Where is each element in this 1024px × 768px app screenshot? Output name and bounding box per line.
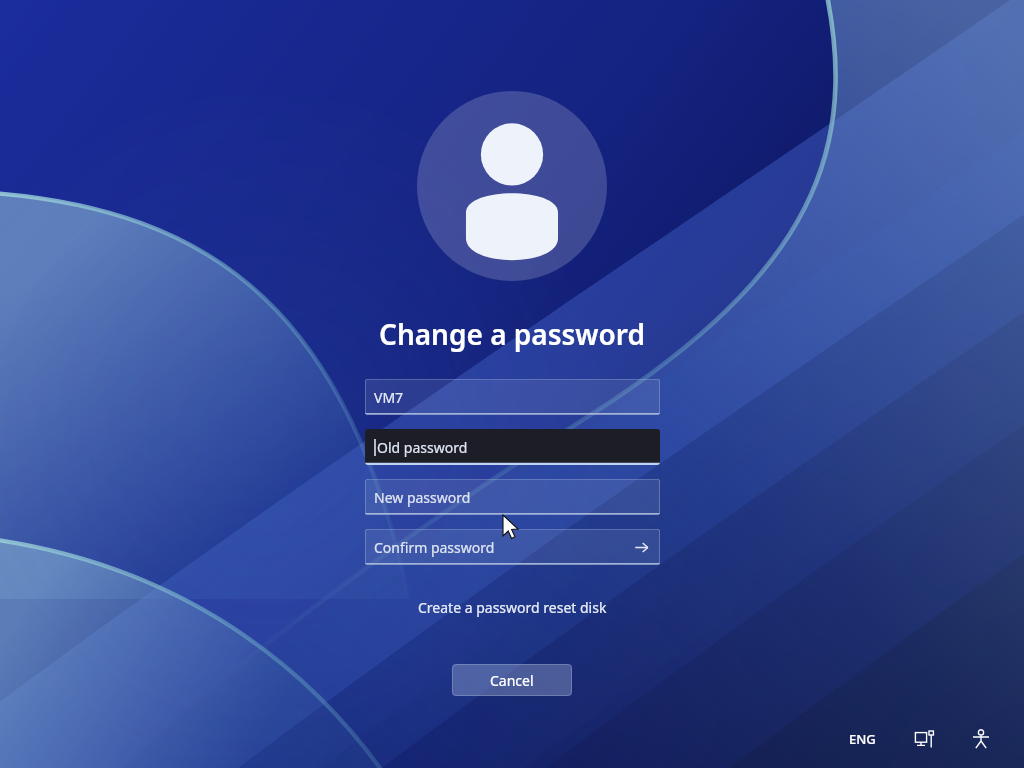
button[interactable]: Accessibility bbox=[964, 722, 998, 756]
button[interactable]: Submit bbox=[628, 534, 654, 560]
button[interactable]: Confirm password bbox=[365, 529, 660, 565]
staticText: Old password bbox=[377, 438, 468, 457]
staticText: New password bbox=[374, 488, 471, 507]
staticText: VM7 bbox=[374, 388, 404, 407]
staticText: Confirm password bbox=[374, 538, 495, 557]
button[interactable]: VM7 bbox=[365, 379, 660, 415]
button[interactable]: New password bbox=[365, 479, 660, 515]
button[interactable]: Old password bbox=[365, 429, 660, 465]
staticText: Create a password reset disk bbox=[418, 598, 607, 617]
staticText: Change a password bbox=[379, 315, 645, 353]
staticText: Cancel bbox=[490, 671, 534, 690]
button[interactable]: ENG bbox=[841, 725, 884, 753]
button[interactable]: Create a password reset disk bbox=[412, 595, 613, 620]
staticText: ENG bbox=[849, 730, 876, 748]
button[interactable]: Network bbox=[908, 722, 942, 756]
button[interactable]: Cancel bbox=[452, 664, 572, 696]
